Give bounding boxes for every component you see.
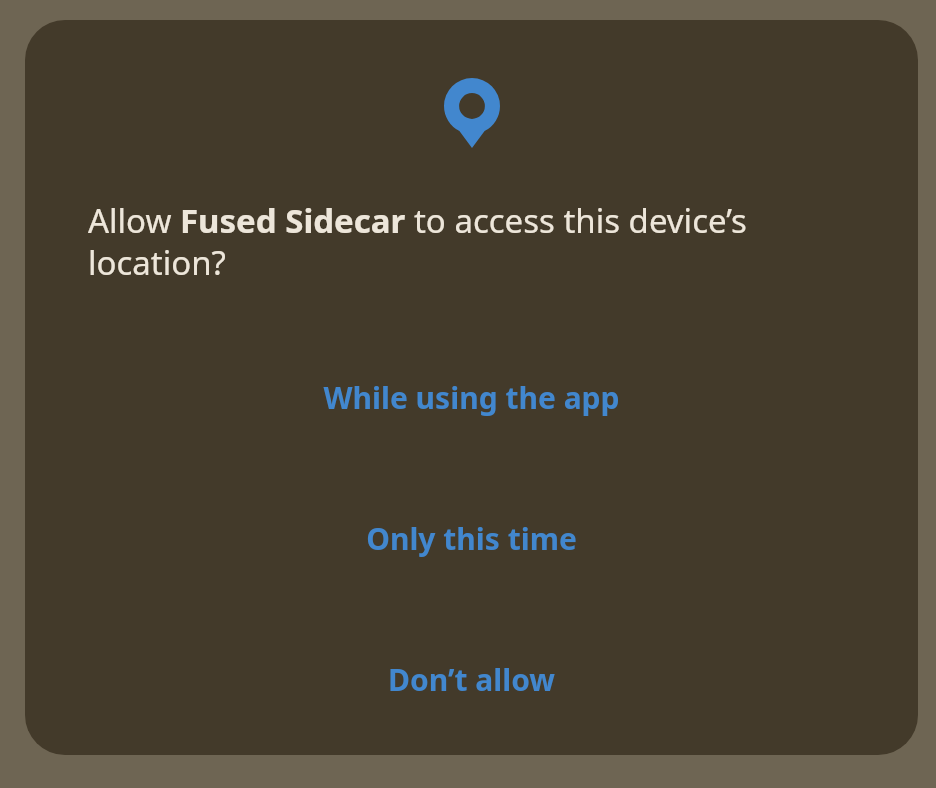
staticText: Only this time <box>366 518 577 559</box>
other: Location <box>444 78 500 148</box>
button[interactable]: Don’t allow <box>25 649 918 710</box>
button[interactable]: While using the app <box>25 367 918 428</box>
staticText: Allow Fused Sidecar to access this devic… <box>88 198 878 285</box>
staticText: Don’t allow <box>388 659 555 700</box>
staticText: While using the app <box>323 377 620 418</box>
button[interactable]: Only this time <box>25 508 918 569</box>
